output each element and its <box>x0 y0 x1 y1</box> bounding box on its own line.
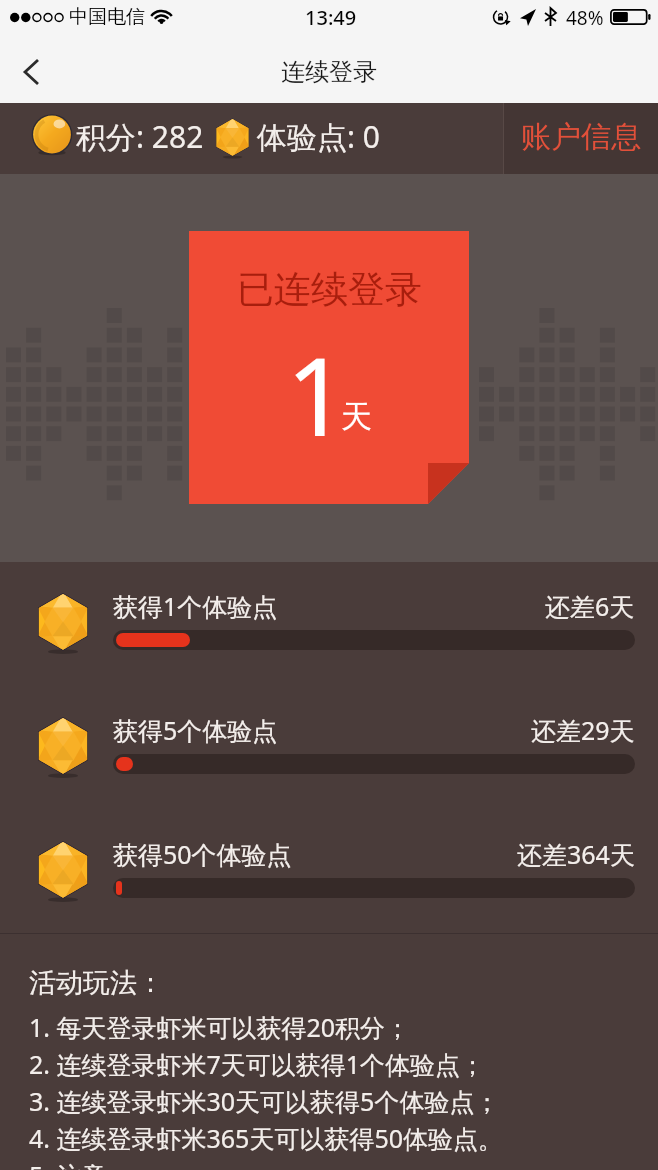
staticText: 账户信息 <box>521 118 641 156</box>
staticText: 5. 注意 <box>29 1158 107 1170</box>
staticText: 还差364天 <box>517 837 635 871</box>
button[interactable]: 获得5个体验点 <box>0 713 658 801</box>
button[interactable]: Back <box>0 40 62 103</box>
staticText: 3. 连续登录虾米30天可以获得5个体验点； <box>29 1084 500 1118</box>
staticText: 1 <box>286 321 348 468</box>
staticText: 获得50个体验点 <box>113 837 292 871</box>
staticText: 积分: 282 <box>76 116 204 157</box>
staticText: 获得1个体验点 <box>113 589 278 623</box>
staticText: 13:49 <box>305 4 357 31</box>
staticText: 获得5个体验点 <box>113 713 278 747</box>
staticText: 还差29天 <box>531 713 635 747</box>
staticText: 1. 每天登录虾米可以获得20积分； <box>29 1010 411 1044</box>
staticText: 2. 连续登录虾米7天可以获得1个体验点； <box>29 1047 486 1081</box>
staticText: 体验点: 0 <box>257 116 380 157</box>
button[interactable]: 获得50个体验点 <box>0 837 658 925</box>
staticText: 已连续登录 <box>237 266 422 313</box>
button[interactable]: 获得1个体验点 <box>0 589 658 677</box>
staticText: 活动玩法： <box>29 966 164 1000</box>
staticText: 4. 连续登录虾米365天可以获得50体验点。 <box>29 1121 504 1155</box>
staticText: 天 <box>341 397 372 436</box>
staticText: 48% <box>566 5 604 31</box>
button[interactable]: 账户信息 <box>504 103 658 174</box>
staticText: 还差6天 <box>545 589 635 623</box>
staticText: 连续登录 <box>281 57 377 87</box>
staticText: 中国电信 <box>69 5 145 29</box>
